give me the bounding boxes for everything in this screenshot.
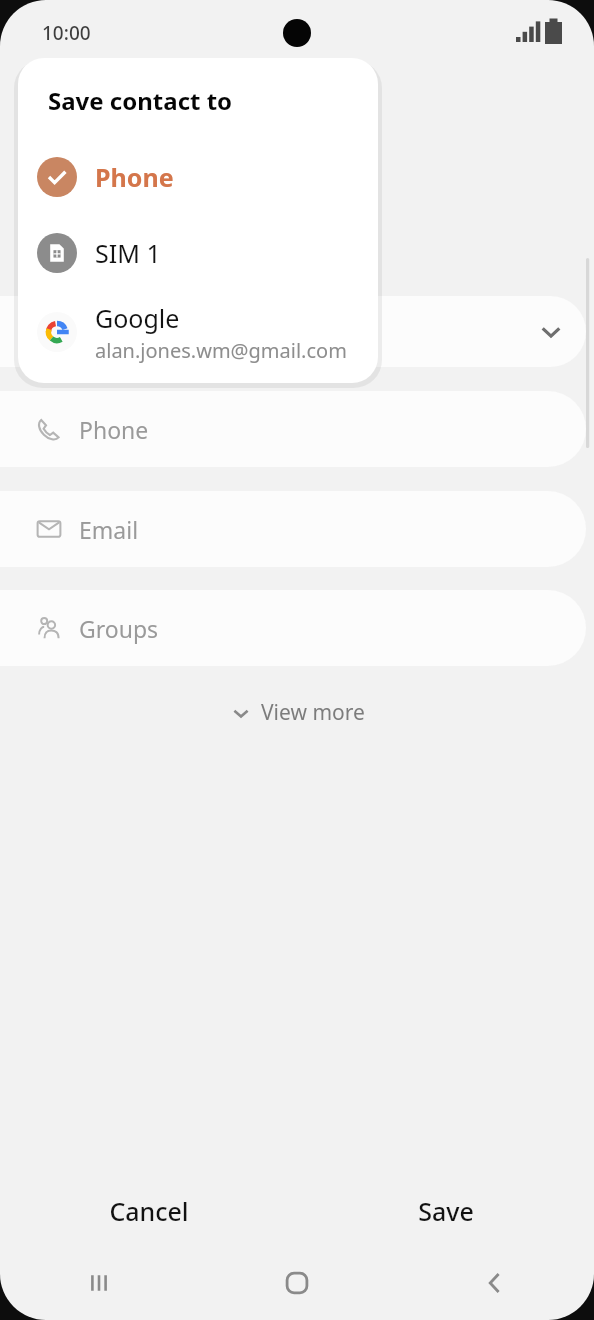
staticText: Phone: [79, 414, 149, 445]
staticText: Save contact to: [48, 84, 233, 117]
staticText: Phone: [95, 160, 174, 194]
staticText: SIM 1: [95, 236, 161, 270]
button[interactable]: View more: [220, 692, 375, 733]
staticText: Groups: [79, 613, 159, 644]
button[interactable]: Groups: [0, 590, 586, 666]
staticText: Cancel: [109, 1194, 189, 1228]
button[interactable]: Expand account: [0, 296, 586, 367]
staticText: Email: [79, 514, 139, 545]
button[interactable]: Email: [0, 491, 586, 567]
button[interactable]: Google: [18, 291, 378, 373]
button[interactable]: Back: [396, 1246, 594, 1320]
staticText: Save: [418, 1194, 474, 1228]
other: Expand account: [538, 319, 564, 345]
button[interactable]: Recents: [0, 1246, 198, 1320]
button[interactable]: SIM 1: [18, 215, 378, 291]
button[interactable]: Phone: [0, 391, 586, 467]
button[interactable]: Home: [198, 1246, 396, 1320]
staticText: Google: [95, 301, 180, 335]
staticText: 10:00: [42, 20, 91, 46]
staticText: View more: [261, 698, 365, 727]
button[interactable]: Phone: [18, 139, 378, 215]
button[interactable]: Save: [297, 1176, 594, 1246]
staticText: alan.jones.wm@gmail.com: [95, 337, 347, 364]
button[interactable]: Cancel: [0, 1176, 297, 1246]
